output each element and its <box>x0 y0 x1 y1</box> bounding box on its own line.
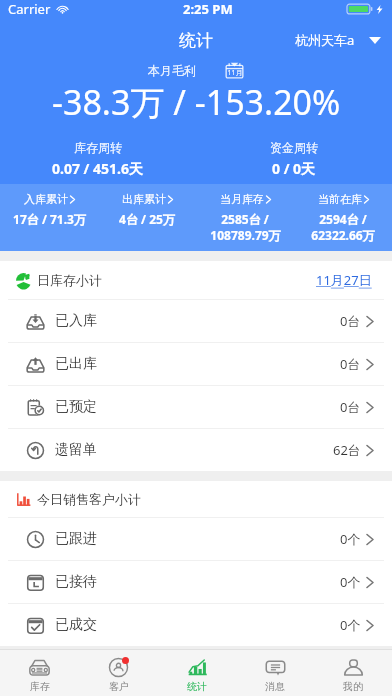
button[interactable]: 消息 <box>236 650 314 696</box>
staticText: 日库存小计 <box>37 272 102 288</box>
staticText: 入库累计 <box>24 192 68 206</box>
staticText: 已成交 <box>55 616 97 634</box>
button[interactable]: 11月27日 <box>316 271 372 289</box>
button[interactable]: 已成交 <box>0 604 392 646</box>
staticText: -38.3万 / -153.20% <box>52 79 341 125</box>
staticText: 0台 <box>340 398 361 416</box>
button[interactable]: 已预定 <box>0 386 392 428</box>
staticText: 17台 / 71.3万 <box>13 211 86 227</box>
staticText: 已出库 <box>55 355 97 373</box>
staticText: 2585台 / <box>221 211 269 227</box>
staticText: 库存周转 <box>74 140 122 155</box>
staticText: 已接待 <box>55 573 97 591</box>
staticText: 本月毛利 <box>148 63 196 78</box>
staticText: 当前在库 <box>318 192 362 206</box>
button[interactable]: 统计 <box>158 650 236 696</box>
button[interactable]: 遗留单 <box>0 429 392 471</box>
staticText: 0 / 0天 <box>272 159 316 178</box>
button[interactable]: 杭州天车a <box>295 31 381 49</box>
staticText: 已预定 <box>55 398 97 416</box>
staticText: 2:25 PM <box>183 0 233 18</box>
staticText: 62322.66万 <box>311 227 375 243</box>
staticText: 2594台 / <box>319 211 367 227</box>
staticText: 108789.79万 <box>210 227 281 243</box>
button[interactable]: 已出库 <box>0 343 392 385</box>
button[interactable]: 已跟进 <box>0 518 392 560</box>
staticText: 11月27日 <box>316 271 372 289</box>
button[interactable]: 已接待 <box>0 561 392 603</box>
staticText: 0个 <box>340 616 361 634</box>
staticText: 4台 / 25万 <box>119 211 175 227</box>
staticText: 已入库 <box>55 312 97 330</box>
staticText: 杭州天车a <box>295 31 355 49</box>
button[interactable]: 当月库存 <box>196 184 294 251</box>
staticText: 库存 <box>30 680 50 693</box>
button[interactable]: 我的 <box>314 650 392 696</box>
staticText: 0个 <box>340 573 361 591</box>
button[interactable]: Select month <box>225 61 244 79</box>
staticText: 0个 <box>340 530 361 548</box>
button[interactable]: 入库累计 <box>0 184 98 251</box>
staticText: 0.07 / 451.6天 <box>52 159 144 178</box>
button[interactable]: 当前在库 <box>294 184 392 251</box>
staticText: 客户 <box>109 680 129 693</box>
staticText: 遗留单 <box>55 441 97 459</box>
staticText: 今日销售客户小计 <box>37 491 141 507</box>
staticText: 出库累计 <box>122 192 166 206</box>
staticText: 11月 <box>227 68 243 78</box>
staticText: 消息 <box>265 680 285 693</box>
staticText: 统计 <box>187 680 207 693</box>
staticText: 资金周转 <box>270 140 318 155</box>
staticText: Carrier <box>8 0 51 18</box>
button[interactable]: 已入库 <box>0 300 392 342</box>
staticText: 当月库存 <box>220 192 264 206</box>
button[interactable]: 客户 <box>79 650 158 696</box>
staticText: 0台 <box>340 312 361 330</box>
button[interactable]: 库存 <box>0 650 79 696</box>
button[interactable]: 出库累计 <box>98 184 196 251</box>
staticText: 已跟进 <box>55 530 97 548</box>
staticText: 0台 <box>340 355 361 373</box>
staticText: 统计 <box>179 30 213 51</box>
staticText: 我的 <box>343 680 363 693</box>
staticText: 62台 <box>333 441 361 459</box>
